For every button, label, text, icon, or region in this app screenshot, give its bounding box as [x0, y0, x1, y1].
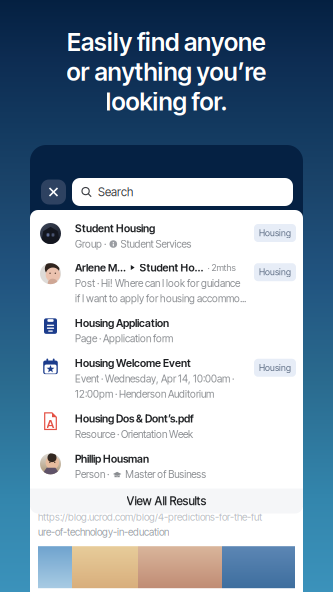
button[interactable]: Search [72, 178, 293, 206]
staticText: Post · Hi! Where can I look for guidance [75, 277, 240, 289]
staticText: A [46, 417, 54, 431]
staticText: Housing [259, 267, 291, 277]
staticText: Housing [259, 228, 291, 238]
staticText: Student Services [121, 238, 192, 250]
button[interactable]: Phillip Housman [30, 445, 303, 489]
staticText: Phillip Housman [75, 452, 149, 465]
staticText: View All Results [126, 494, 206, 508]
staticText: or anything you’re [66, 57, 266, 87]
staticText: ure-of-technology-in-education [38, 526, 169, 538]
staticText: Person · [75, 468, 109, 481]
button[interactable]: Close search [41, 179, 66, 204]
staticText: · 2mths [208, 262, 236, 273]
button[interactable]: Housing Application [30, 310, 303, 350]
button[interactable]: A [30, 405, 303, 445]
staticText: Page · Application form [75, 332, 173, 345]
button[interactable]: Housing Welcome Event [30, 350, 303, 405]
staticText: Student Ho... [140, 261, 204, 274]
staticText: Group · [75, 238, 106, 250]
staticText: Event · Wednesday, Apr 14, 10:00am · [75, 373, 234, 385]
button[interactable]: View All Results [30, 488, 303, 513]
staticText: Master of Business [125, 468, 206, 481]
staticText: if I want to apply for housing accommo..… [75, 292, 246, 305]
button[interactable]: Student Housing [30, 210, 303, 254]
staticText: Housing Welcome Event [75, 357, 191, 370]
staticText: https://blog.ucrod.com/blog/4-prediction… [38, 511, 262, 523]
staticText: Resource · Orientation Week [75, 428, 193, 440]
staticText: 12:00pm · Henderson Auditorium [75, 388, 214, 400]
button[interactable]: Arlene M... [30, 254, 303, 310]
staticText: Easily find anyone [67, 27, 266, 57]
staticText: Housing [259, 362, 291, 373]
staticText: Housing Application [75, 317, 169, 329]
staticText: Arlene M... [75, 261, 126, 274]
staticText: looking for. [105, 87, 227, 116]
staticText: Search [98, 185, 133, 199]
staticText: Housing Dos & Dont’s.pdf [75, 412, 194, 425]
staticText: Student Housing [75, 222, 155, 235]
